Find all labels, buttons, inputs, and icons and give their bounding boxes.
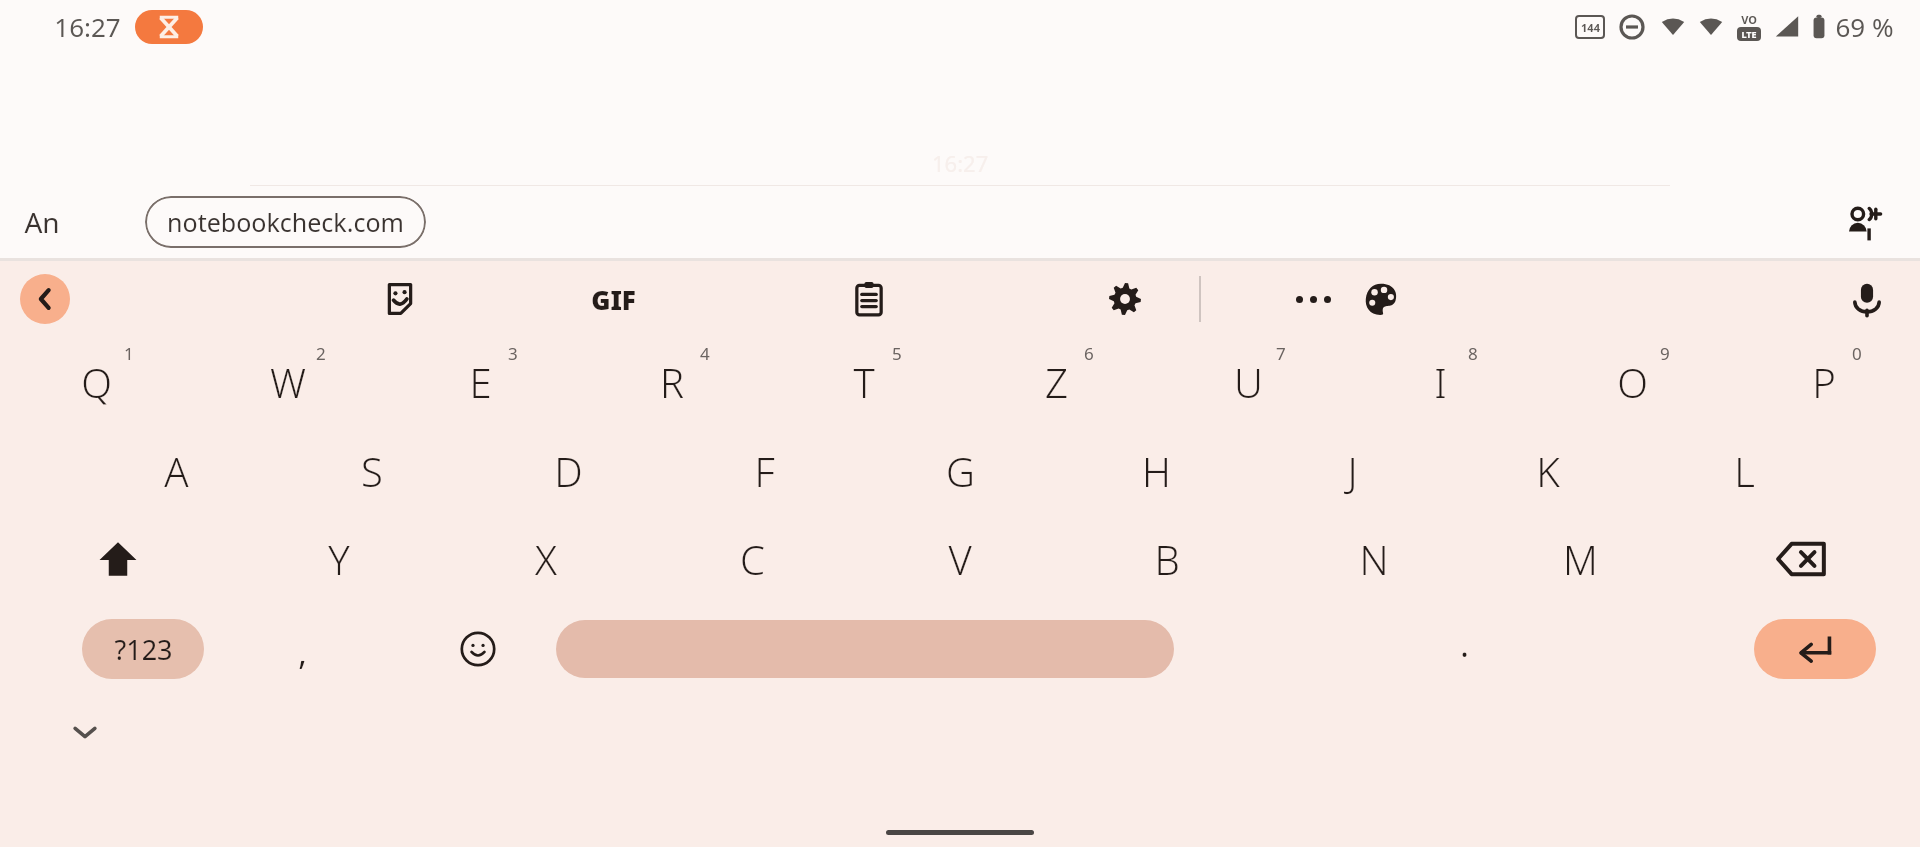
staticText: An bbox=[24, 203, 60, 241]
button[interactable]: D bbox=[470, 427, 666, 515]
button[interactable]: ?123 bbox=[82, 619, 204, 679]
staticText: . bbox=[1460, 623, 1469, 667]
button[interactable]: notebookcheck.com bbox=[145, 196, 426, 248]
staticText: T bbox=[853, 355, 875, 409]
staticText: D bbox=[554, 444, 583, 498]
button[interactable]: U bbox=[1152, 337, 1344, 427]
staticText: Y bbox=[328, 532, 350, 586]
staticText: , bbox=[298, 631, 307, 675]
button[interactable]: K bbox=[1450, 427, 1646, 515]
button[interactable]: R bbox=[576, 337, 768, 427]
button[interactable]: F bbox=[666, 427, 862, 515]
button[interactable]: L bbox=[1646, 427, 1842, 515]
button[interactable]: Y bbox=[236, 515, 442, 603]
staticText: O bbox=[1617, 355, 1648, 409]
button[interactable]: More options bbox=[1277, 263, 1349, 335]
button[interactable]: Emoji bbox=[400, 603, 556, 695]
button[interactable]: Hide keyboard bbox=[56, 703, 114, 761]
button[interactable]: Back bbox=[20, 274, 70, 324]
staticText: K bbox=[1536, 444, 1560, 498]
staticText: B bbox=[1154, 532, 1180, 586]
staticText: I bbox=[1434, 355, 1447, 409]
button[interactable]: Add contact bbox=[1840, 199, 1886, 245]
staticText: N bbox=[1359, 532, 1389, 586]
staticText: V bbox=[948, 532, 972, 586]
button[interactable]: J bbox=[1254, 427, 1450, 515]
staticText: 9 bbox=[1660, 342, 1670, 365]
staticText: U bbox=[1234, 355, 1263, 409]
button[interactable]: X bbox=[442, 515, 649, 603]
staticText: W bbox=[270, 355, 306, 409]
staticText: 2 bbox=[316, 342, 326, 365]
staticText: notebookcheck.com bbox=[167, 205, 404, 239]
staticText: 1 bbox=[124, 342, 134, 365]
button[interactable]: GIF bbox=[577, 263, 649, 335]
button[interactable]: Enter bbox=[1754, 619, 1876, 679]
staticText: 144 bbox=[1581, 20, 1600, 35]
button[interactable]: E bbox=[384, 337, 576, 427]
staticText: J bbox=[1347, 444, 1358, 498]
staticText: GIF bbox=[591, 282, 636, 317]
staticText: VO bbox=[1741, 12, 1757, 27]
button[interactable]: Backspace bbox=[1684, 515, 1920, 603]
button[interactable]: V bbox=[856, 515, 1063, 603]
button[interactable]: Voice input bbox=[1836, 268, 1898, 330]
staticText: C bbox=[740, 532, 765, 586]
staticText: L bbox=[1734, 444, 1755, 498]
staticText: 4 bbox=[700, 342, 710, 365]
button[interactable]: Z bbox=[960, 337, 1152, 427]
button[interactable]: B bbox=[1063, 515, 1270, 603]
staticText: 16:27 bbox=[932, 148, 989, 178]
button[interactable]: Settings bbox=[1089, 263, 1161, 335]
button[interactable]: P bbox=[1728, 337, 1920, 427]
button[interactable]: Space bbox=[556, 620, 1174, 678]
button[interactable]: S bbox=[274, 427, 470, 515]
button[interactable]: Stickers bbox=[364, 263, 436, 335]
staticText: LTE bbox=[1741, 28, 1757, 40]
staticText: G bbox=[946, 444, 975, 498]
staticText: 69 % bbox=[1835, 9, 1894, 44]
button[interactable]: M bbox=[1477, 515, 1684, 603]
staticText: 8 bbox=[1468, 342, 1478, 365]
button[interactable]: H bbox=[1058, 427, 1254, 515]
staticText: A bbox=[164, 444, 189, 498]
button[interactable]: I bbox=[1344, 337, 1536, 427]
staticText: 5 bbox=[892, 342, 902, 365]
staticText: 3 bbox=[508, 342, 518, 365]
button[interactable]: W bbox=[192, 337, 384, 427]
staticText: E bbox=[469, 355, 492, 409]
button[interactable]: Shift bbox=[0, 515, 236, 603]
staticText: P bbox=[1812, 355, 1836, 409]
staticText: M bbox=[1563, 532, 1598, 586]
staticText: ?123 bbox=[114, 631, 173, 668]
staticText: 0 bbox=[1852, 342, 1862, 365]
staticText: 16:27 bbox=[54, 9, 121, 44]
button[interactable]: Theme bbox=[1345, 263, 1417, 335]
button[interactable]: Q bbox=[0, 337, 192, 427]
button[interactable]: Clipboard bbox=[833, 263, 905, 335]
button[interactable]: G bbox=[862, 427, 1058, 515]
button[interactable]: N bbox=[1270, 515, 1477, 603]
button[interactable]: , bbox=[204, 603, 400, 695]
button[interactable]: C bbox=[649, 515, 856, 603]
staticText: Q bbox=[81, 355, 112, 409]
staticText: 7 bbox=[1276, 342, 1286, 365]
button[interactable]: O bbox=[1536, 337, 1728, 427]
button[interactable]: A bbox=[78, 427, 274, 515]
staticText: 6 bbox=[1084, 342, 1094, 365]
staticText: F bbox=[754, 444, 775, 498]
staticText: S bbox=[361, 444, 383, 498]
staticText: H bbox=[1142, 444, 1171, 498]
staticText: X bbox=[535, 532, 557, 586]
staticText: R bbox=[660, 355, 684, 409]
staticText: Z bbox=[1045, 355, 1068, 409]
button[interactable]: T bbox=[768, 337, 960, 427]
